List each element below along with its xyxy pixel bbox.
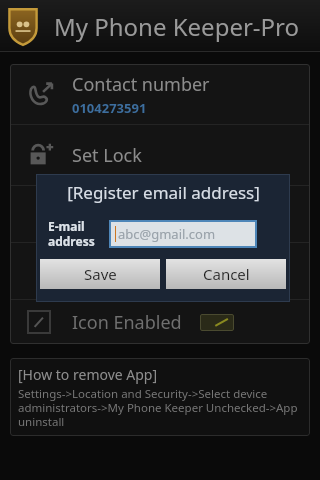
staticText: abc@gmail.com <box>118 225 216 243</box>
button[interactable]: Set Lock <box>10 125 310 185</box>
button[interactable]: Icon enabled toggle <box>200 314 234 331</box>
staticText: My Phone Keeper-Pro <box>54 10 300 43</box>
button[interactable]: Cancel <box>166 259 286 289</box>
staticText: Save <box>84 264 117 284</box>
button[interactable]: Icon Enabled <box>10 300 310 344</box>
button[interactable]: Save <box>40 259 160 289</box>
staticText: E-mail address <box>48 218 95 249</box>
staticText: Settings->Location and Security->Select … <box>18 386 302 429</box>
staticText: [How to remove App] <box>18 365 158 384</box>
staticText: Cancel <box>203 264 250 284</box>
button[interactable]: [How to remove App] <box>10 358 310 436</box>
staticText: 0104273591 <box>72 99 147 117</box>
staticText: Contact number <box>72 72 210 97</box>
button[interactable]: Contact number <box>10 64 310 124</box>
button[interactable]: abc@gmail.com <box>111 222 255 246</box>
staticText: Icon Enabled <box>72 310 182 335</box>
staticText: Set Lock <box>72 143 142 168</box>
staticText: [Register email address] <box>67 181 260 204</box>
